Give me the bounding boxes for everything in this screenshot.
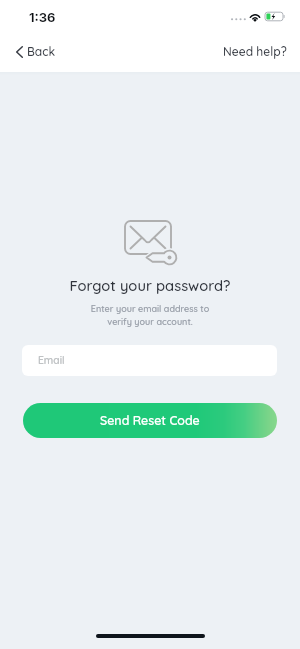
staticText: Need help? <box>223 44 287 59</box>
staticText: Enter your email address to verify your … <box>0 303 300 328</box>
button[interactable]: Email <box>22 345 277 376</box>
button[interactable]: Send Reset Code <box>23 403 277 438</box>
other: Email key <box>124 220 178 265</box>
staticText: Email <box>38 354 65 367</box>
staticText: Forgot your password? <box>0 276 300 294</box>
staticText: Send Reset Code <box>100 413 200 428</box>
button[interactable]: Back <box>10 41 64 62</box>
staticText: Back <box>27 44 56 59</box>
staticText: 1:36 <box>29 9 56 25</box>
button[interactable]: Need help? <box>215 41 300 62</box>
